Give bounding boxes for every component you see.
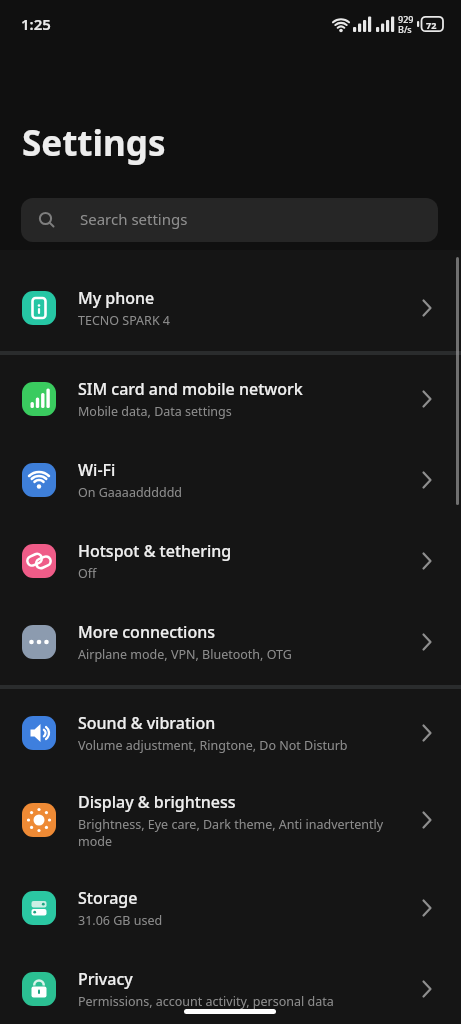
staticText: Wi-Fi bbox=[78, 459, 116, 481]
button[interactable]: Wi-Fi bbox=[0, 439, 461, 520]
staticText: Sound & vibration bbox=[78, 712, 216, 734]
staticText: My phone bbox=[78, 287, 155, 309]
button[interactable]: More connections bbox=[0, 601, 461, 682]
staticText: 72 bbox=[426, 19, 437, 31]
button[interactable]: Display & brightness bbox=[0, 773, 461, 867]
button[interactable]: My phone bbox=[0, 267, 461, 348]
staticText: 31.06 GB used bbox=[78, 912, 163, 929]
staticText: Volume adjustment, Ringtone, Do Not Dist… bbox=[78, 737, 348, 754]
button[interactable]: Sound & vibration bbox=[0, 692, 461, 773]
staticText: 1:25 bbox=[21, 14, 51, 34]
staticText: Storage bbox=[78, 887, 138, 909]
button[interactable]: Hotspot & tethering bbox=[0, 520, 461, 601]
button[interactable]: Privacy bbox=[0, 948, 461, 1024]
staticText: B/s bbox=[398, 23, 412, 35]
staticText: Display & brightness bbox=[78, 791, 236, 813]
staticText: On Gaaaadddddd bbox=[78, 484, 183, 501]
staticText: Settings bbox=[22, 119, 166, 167]
staticText: 929 bbox=[398, 13, 414, 25]
staticText: Search settings bbox=[80, 209, 188, 229]
staticText: Permissions, account activity, personal … bbox=[78, 993, 334, 1010]
staticText: Mobile data, Data settings bbox=[78, 403, 232, 420]
staticText: More connections bbox=[78, 621, 216, 643]
staticText: Airplane mode, VPN, Bluetooth, OTG bbox=[78, 646, 292, 663]
staticText: Brightness, Eye care, Dark theme, Anti i… bbox=[78, 816, 384, 850]
staticText: SIM card and mobile network bbox=[78, 378, 303, 400]
button[interactable]: SIM card and mobile network bbox=[0, 358, 461, 439]
staticText: Privacy bbox=[78, 968, 133, 990]
staticText: TECNO SPARK 4 bbox=[78, 312, 171, 329]
button[interactable]: Storage bbox=[0, 867, 461, 948]
button[interactable]: Search settings bbox=[21, 198, 438, 242]
staticText: Off bbox=[78, 565, 97, 582]
staticText: Hotspot & tethering bbox=[78, 540, 232, 562]
